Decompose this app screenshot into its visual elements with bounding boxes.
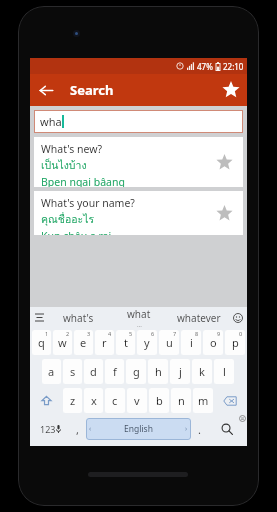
- button[interactable]: n: [171, 388, 191, 413]
- button[interactable]: b: [149, 388, 169, 413]
- staticText: 9: [217, 330, 221, 337]
- staticText: 1: [45, 330, 49, 337]
- staticText: l: [223, 364, 226, 379]
- staticText: c: [112, 393, 118, 408]
- button[interactable]: Favorite: [211, 149, 237, 175]
- staticText: 0: [239, 330, 243, 337]
- button[interactable]: ,: [69, 415, 86, 443]
- button[interactable]: j: [170, 359, 190, 384]
- staticText: k: [199, 364, 205, 379]
- button[interactable]: o: [203, 330, 223, 355]
- button[interactable]: Emoji: [229, 307, 247, 328]
- staticText: f: [113, 364, 117, 379]
- button[interactable]: whatever: [169, 307, 229, 328]
- staticText: a: [48, 364, 55, 379]
- button[interactable]: m: [193, 388, 213, 413]
- button[interactable]: f: [105, 359, 124, 384]
- staticText: 7: [173, 330, 177, 337]
- staticText: Search: [70, 81, 114, 99]
- button[interactable]: c: [105, 388, 125, 413]
- staticText: ...: [137, 321, 142, 328]
- button[interactable]: i: [181, 330, 201, 355]
- button[interactable]: e: [74, 330, 93, 355]
- button[interactable]: Shift: [31, 386, 62, 415]
- button[interactable]: h: [148, 359, 168, 384]
- staticText: q: [38, 335, 45, 350]
- button[interactable]: d: [84, 359, 103, 384]
- staticText: m: [198, 393, 209, 408]
- button[interactable]: q: [32, 330, 51, 355]
- staticText: What's your name?: [41, 196, 135, 210]
- staticText: n: [178, 393, 185, 408]
- button[interactable]: l: [214, 359, 234, 384]
- staticText: 5: [129, 330, 133, 337]
- staticText: Bpen ngai bâang: [41, 175, 125, 187]
- staticText: v: [134, 393, 140, 408]
- staticText: What's new?: [41, 142, 103, 156]
- button[interactable]: 123: [31, 415, 69, 443]
- staticText: r: [102, 335, 107, 350]
- staticText: e: [80, 335, 87, 350]
- button[interactable]: u: [159, 330, 179, 355]
- staticText: t: [124, 335, 128, 350]
- staticText: 2: [66, 330, 70, 337]
- button[interactable]: Backspace: [214, 386, 246, 415]
- button[interactable]: x: [84, 388, 103, 413]
- button[interactable]: Favorite: [211, 200, 237, 226]
- button[interactable]: p: [225, 330, 245, 355]
- staticText: y: [144, 335, 150, 350]
- staticText: w: [58, 335, 67, 350]
- staticText: 8: [195, 330, 199, 337]
- staticText: 3: [87, 330, 91, 337]
- staticText: English: [124, 423, 153, 435]
- staticText: h: [155, 364, 162, 379]
- staticText: Kun chêu a rai: [41, 229, 112, 235]
- button[interactable]: Back: [30, 74, 62, 106]
- button[interactable]: wha: [34, 110, 243, 133]
- button[interactable]: w: [53, 330, 72, 355]
- staticText: เป็นไงบ้าง: [41, 157, 87, 174]
- staticText: 123: [40, 423, 56, 435]
- staticText: x: [91, 393, 97, 408]
- staticText: wha: [40, 114, 62, 129]
- button[interactable]: Favorites: [215, 74, 247, 106]
- button[interactable]: what: [109, 307, 169, 328]
- button[interactable]: k: [192, 359, 212, 384]
- button[interactable]: Menu: [30, 307, 48, 328]
- staticText: o: [210, 335, 217, 350]
- staticText: s: [70, 364, 76, 379]
- button[interactable]: y: [137, 330, 157, 355]
- button[interactable]: z: [63, 388, 82, 413]
- staticText: i: [190, 335, 193, 350]
- button[interactable]: r: [95, 330, 114, 355]
- button[interactable]: g: [126, 359, 146, 384]
- staticText: 6: [151, 330, 155, 337]
- staticText: 22:10: [223, 61, 244, 72]
- staticText: คุณชื่ออะไร: [41, 211, 95, 228]
- staticText: ,: [76, 422, 79, 437]
- button[interactable]: Search: [208, 415, 246, 443]
- staticText: 4: [108, 330, 112, 337]
- button[interactable]: s: [63, 359, 82, 384]
- staticText: j: [179, 364, 182, 379]
- staticText: 47%: [197, 61, 213, 72]
- button[interactable]: what's: [48, 307, 109, 328]
- staticText: z: [70, 393, 76, 408]
- button[interactable]: a: [42, 359, 61, 384]
- staticText: whatever: [177, 311, 221, 325]
- staticText: p: [232, 335, 239, 350]
- button[interactable]: v: [127, 388, 147, 413]
- staticText: d: [90, 364, 97, 379]
- button[interactable]: .: [191, 415, 208, 443]
- staticText: u: [166, 335, 173, 350]
- staticText: .: [198, 422, 201, 437]
- staticText: ‹: [89, 424, 92, 434]
- staticText: what: [127, 307, 151, 321]
- staticText: g: [133, 364, 140, 379]
- button[interactable]: t: [116, 330, 135, 355]
- staticText: what's: [63, 311, 94, 325]
- button[interactable]: What's your name?: [34, 191, 243, 235]
- staticText: b: [156, 393, 163, 408]
- button[interactable]: What's new?: [34, 137, 243, 187]
- button[interactable]: English: [86, 418, 191, 440]
